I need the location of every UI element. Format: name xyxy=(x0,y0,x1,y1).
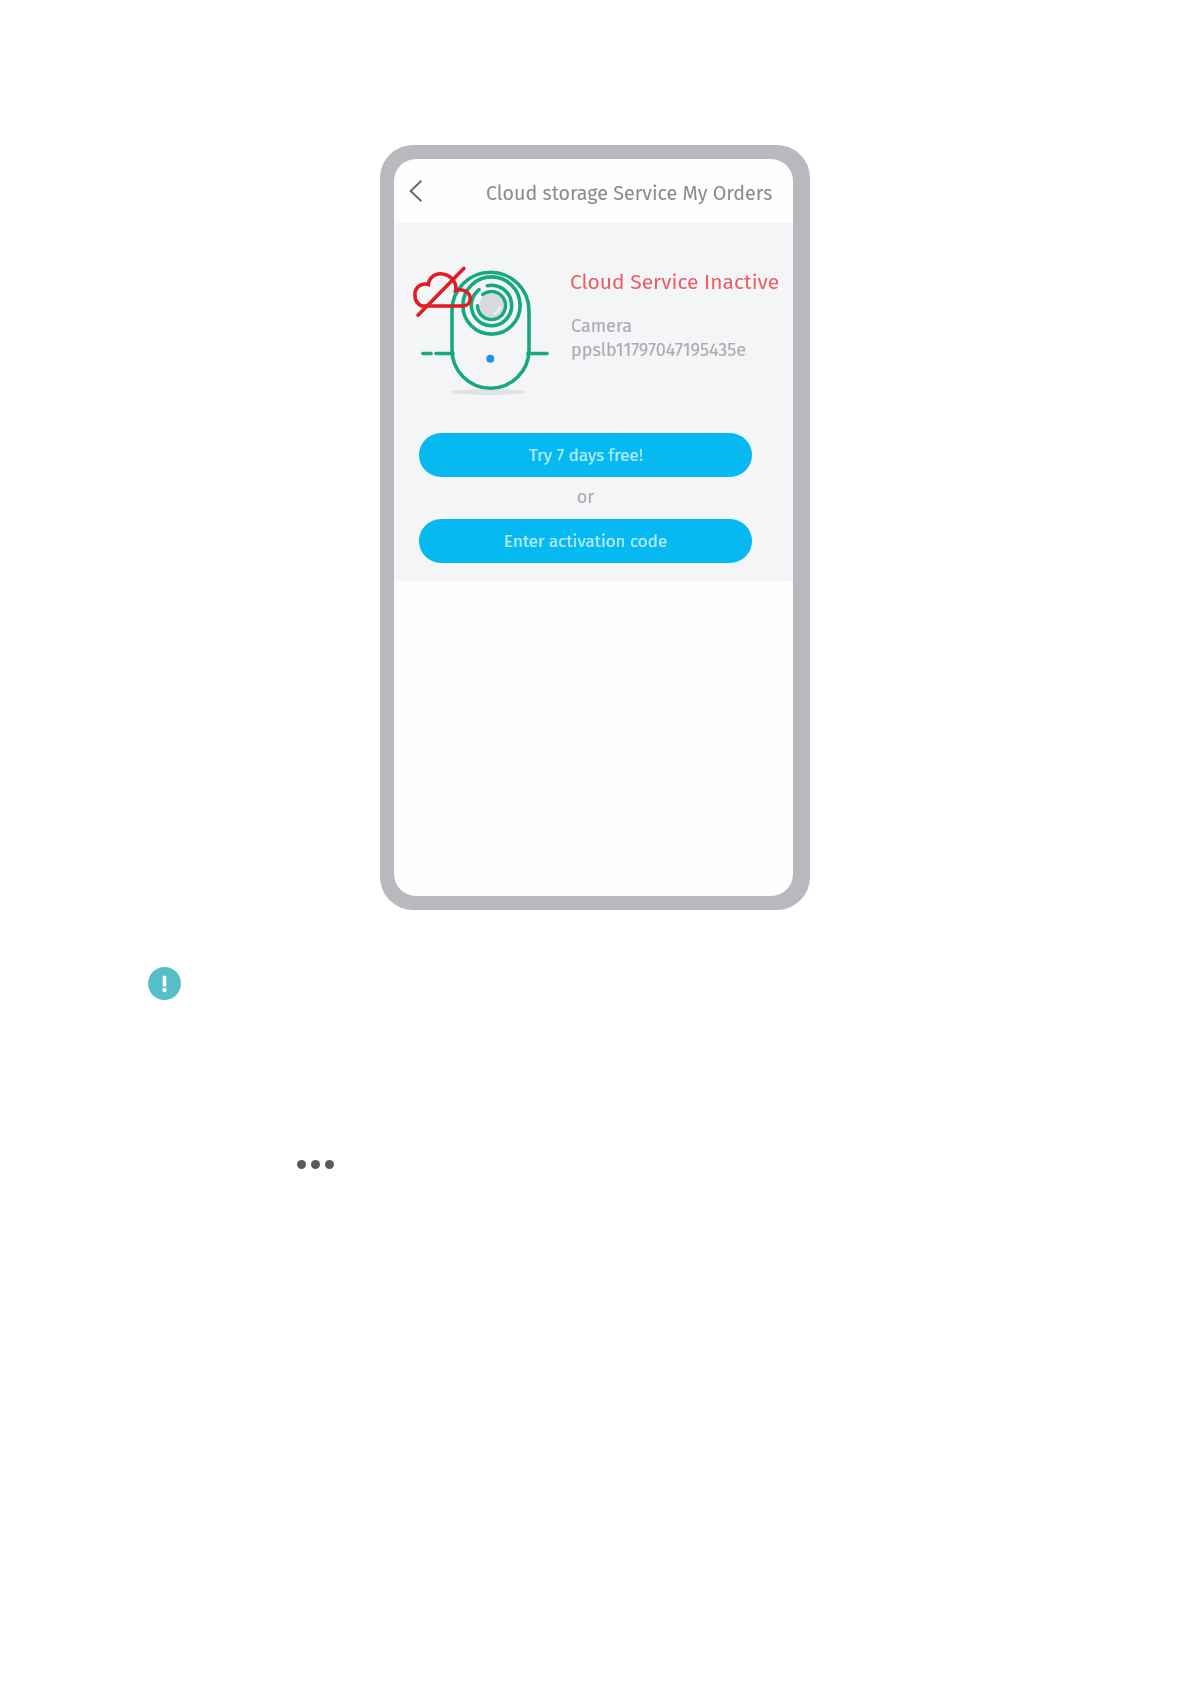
staticText: Enter activation code xyxy=(504,531,668,551)
staticText: Cloud Service Inactive xyxy=(570,269,780,294)
button[interactable]: Try 7 days free! xyxy=(419,433,752,477)
button[interactable]: Enter activation code xyxy=(419,519,752,563)
staticText: Camera ppslb11797047195435e xyxy=(571,315,747,360)
button[interactable]: Information xyxy=(148,967,181,1000)
staticText: Cloud storage Service My Orders xyxy=(486,182,773,206)
staticText: or xyxy=(419,486,752,508)
button[interactable]: Back xyxy=(396,169,440,213)
staticText: Try 7 days free! xyxy=(529,445,643,465)
